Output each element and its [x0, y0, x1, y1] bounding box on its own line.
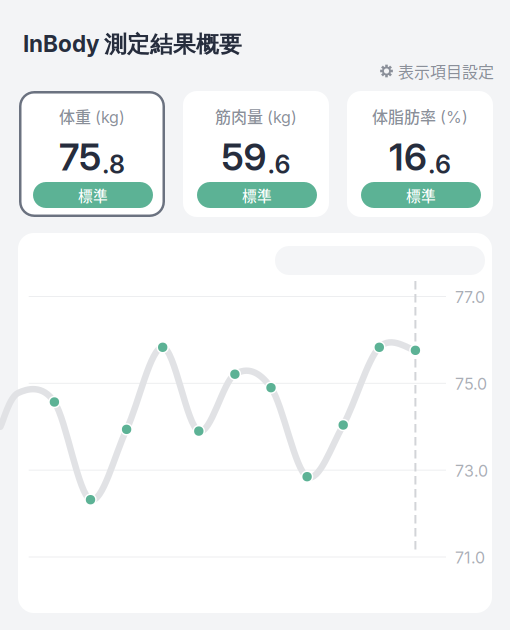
- staticText: 標準: [406, 184, 436, 206]
- staticText: 71.0: [455, 548, 485, 567]
- staticText: .6: [428, 149, 451, 180]
- staticText: (kg): [95, 107, 125, 127]
- staticText: 筋肉量: [215, 104, 263, 128]
- staticText: 59: [221, 134, 266, 180]
- staticText: 77.0: [455, 287, 485, 307]
- staticText: InBody 測定結果概要: [23, 30, 242, 59]
- button[interactable]: 体重: [19, 91, 165, 217]
- staticText: 16: [389, 134, 427, 180]
- staticText: 75.0: [455, 374, 487, 394]
- staticText: 75: [59, 134, 101, 180]
- button[interactable]: 筋肉量: [183, 91, 329, 217]
- staticText: 体重: [59, 104, 91, 128]
- staticText: (%): [440, 107, 468, 127]
- staticText: 表示項目設定: [398, 59, 494, 83]
- button[interactable]: 体脂肪率: [347, 91, 493, 217]
- staticText: .6: [267, 149, 290, 180]
- staticText: .8: [102, 149, 125, 180]
- staticText: 標準: [242, 184, 272, 206]
- staticText: (kg): [267, 107, 297, 127]
- staticText: 体脂肪率: [372, 104, 436, 128]
- staticText: 標準: [78, 184, 108, 206]
- staticText: 73.0: [455, 461, 488, 481]
- button[interactable]: 表示項目設定: [380, 61, 494, 81]
